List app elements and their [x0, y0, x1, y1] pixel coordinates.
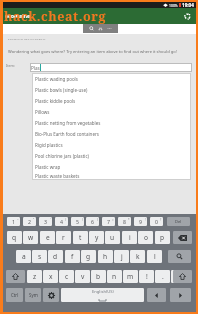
- staticText: ?: [160, 218, 162, 222]
- button[interactable]: d: [48, 250, 63, 263]
- button[interactable]: w: [23, 231, 38, 244]
- staticText: ": [33, 218, 35, 222]
- button[interactable]: Ctrl: [6, 288, 23, 302]
- button[interactable]: o: [138, 231, 153, 244]
- staticText: Rigid plastics: [35, 142, 63, 148]
- staticText: y: [95, 233, 99, 242]
- button[interactable]: e: [40, 231, 55, 244]
- button[interactable]: Plastic wading pools: [32, 73, 191, 84]
- button[interactable]: i: [122, 231, 137, 244]
- button[interactable]: 1: [7, 217, 20, 226]
- button[interactable]: 0: [150, 217, 163, 226]
- staticText: 6: [91, 218, 94, 225]
- button[interactable]: Plastic wrap: [32, 161, 191, 172]
- staticText: r: [62, 233, 65, 242]
- button[interactable]: Plastic kiddie pools: [32, 95, 191, 106]
- staticText: *: [128, 218, 130, 222]
- button[interactable]: t: [73, 231, 88, 244]
- staticText: 4: [60, 218, 63, 225]
- staticText: 100%: [169, 3, 178, 8]
- button[interactable]: p: [155, 231, 170, 244]
- button[interactable]: j: [114, 250, 129, 263]
- button[interactable]: Recycle: [181, 10, 194, 23]
- button[interactable]: 5: [71, 217, 84, 226]
- button[interactable]: Plastic waste baskets: [32, 172, 191, 180]
- staticText: p: [160, 233, 165, 242]
- button[interactable]: n: [107, 270, 122, 283]
- staticText: Item:: [6, 63, 15, 68]
- staticText: Plastic bowls (single-use): [35, 87, 88, 93]
- button[interactable]: 9: [134, 217, 147, 226]
- staticText: English(US): [92, 289, 114, 295]
- staticText: k: [136, 252, 140, 261]
- button[interactable]: Plastic bowls (single-use): [32, 84, 191, 95]
- button[interactable]: 7: [102, 217, 115, 226]
- button[interactable]: Pool chlorine jars (plastic): [32, 150, 191, 161]
- button[interactable]: 4: [55, 217, 68, 226]
- button[interactable]: Search: [168, 250, 191, 263]
- button[interactable]: Sym: [25, 288, 41, 302]
- staticText: 9: [139, 218, 142, 225]
- staticText: =: [112, 218, 114, 222]
- button[interactable]: Left: [147, 288, 166, 302]
- button[interactable]: !: [139, 270, 154, 283]
- button[interactable]: Shift right: [173, 270, 192, 283]
- staticText: c: [65, 272, 69, 281]
- button[interactable]: 3: [39, 217, 52, 226]
- button[interactable]: Bio-Plus Earth food containers: [32, 128, 191, 139]
- staticText: Plastic netting from vegetables: [35, 120, 101, 126]
- button[interactable]: 6: [86, 217, 99, 226]
- staticText: f: [71, 252, 74, 261]
- staticText: Plastic kiddie pools: [35, 98, 76, 104]
- button[interactable]: ?: [171, 270, 186, 283]
- button[interactable]: Backspace: [173, 231, 192, 244]
- staticText: 19:04: [182, 2, 194, 8]
- button[interactable]: a: [16, 250, 31, 263]
- staticText: !: [146, 272, 148, 281]
- button[interactable]: u: [105, 231, 120, 244]
- button[interactable]: c: [59, 270, 74, 283]
- staticText: ECOMAINE RECYCLOPEDIA: [8, 37, 46, 40]
- staticText: i: [129, 233, 131, 242]
- button[interactable]: Right: [170, 288, 191, 302]
- staticText: 1: [12, 218, 15, 225]
- button[interactable]: Shift: [6, 270, 25, 283]
- staticText: 8: [123, 218, 126, 225]
- staticText: .: [162, 272, 164, 281]
- button[interactable]: q: [7, 231, 22, 244]
- button[interactable]: m: [123, 270, 138, 283]
- staticText: w: [28, 233, 34, 242]
- staticText: Plastic wading pools: [35, 76, 78, 82]
- staticText: h: [103, 252, 108, 261]
- staticText: g: [86, 252, 91, 261]
- staticText: ecomaine: [5, 12, 31, 19]
- button[interactable]: h: [98, 250, 113, 263]
- button[interactable]: Delete: [167, 217, 190, 226]
- button[interactable]: Settings: [43, 288, 59, 302]
- staticText: hack.cheat.org: [4, 8, 106, 25]
- button[interactable]: k: [130, 250, 145, 263]
- button[interactable]: 8: [118, 217, 131, 226]
- button[interactable]: z: [27, 270, 42, 283]
- button[interactable]: f: [65, 250, 80, 263]
- button[interactable]: y: [89, 231, 104, 244]
- staticText: x: [49, 272, 53, 281]
- button[interactable]: v: [75, 270, 90, 283]
- button[interactable]: Space: [61, 288, 144, 302]
- button[interactable]: 2: [23, 217, 36, 226]
- button[interactable]: b: [91, 270, 106, 283]
- staticText: j: [121, 252, 123, 261]
- button[interactable]: x: [43, 270, 58, 283]
- button[interactable]: s: [32, 250, 47, 263]
- staticText: ): [97, 218, 98, 222]
- button[interactable]: r: [56, 231, 71, 244]
- button[interactable]: l: [147, 250, 162, 263]
- button[interactable]: Plastic netting from vegetables: [32, 117, 191, 128]
- button[interactable]: .: [155, 270, 170, 283]
- button[interactable]: g: [81, 250, 96, 263]
- button[interactable]: Rigid plastics: [32, 139, 191, 150]
- button[interactable]: Plas: [30, 63, 192, 72]
- button[interactable]: Pillows: [32, 106, 191, 117]
- staticText: Pillows: [35, 109, 50, 115]
- staticText: Del: [175, 219, 182, 224]
